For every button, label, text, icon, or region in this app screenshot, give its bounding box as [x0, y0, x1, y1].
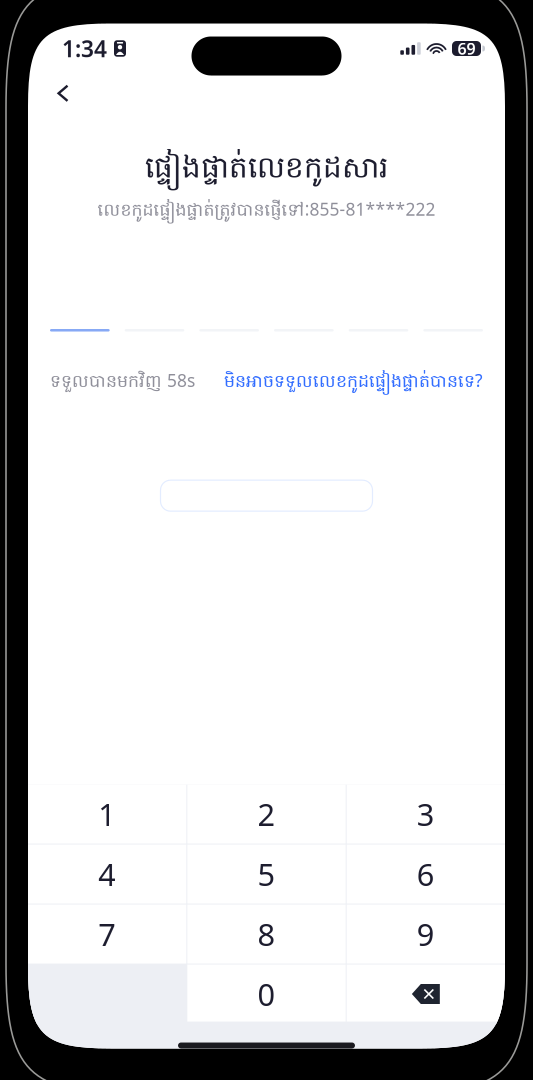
- staticText: 1:34: [62, 33, 107, 63]
- button[interactable]: 5: [187, 844, 346, 903]
- staticText: 0: [257, 974, 275, 1014]
- button[interactable]: 1: [28, 784, 186, 843]
- button[interactable]: 3: [347, 784, 505, 843]
- staticText: លេខកូដផ្ទៀងផ្ទាត់ត្រូវបានផ្ញើទៅៈ855-81**…: [97, 197, 435, 224]
- button[interactable]: មិនអាចទទួលលេខកូដផ្ទៀងផ្ទាត់បានទេ?: [224, 369, 483, 395]
- button[interactable]: 8: [187, 904, 346, 963]
- staticText: 2: [257, 794, 275, 834]
- staticText: 3: [417, 794, 435, 834]
- staticText: ទទួលបានមកវិញ 58s: [50, 369, 195, 395]
- button[interactable]: Back: [42, 75, 84, 111]
- staticText: 9: [417, 914, 435, 954]
- button[interactable]: 2: [187, 784, 346, 843]
- staticText: 7: [98, 914, 116, 954]
- button[interactable]: 6: [347, 844, 505, 903]
- staticText: មិនអាចទទួលលេខកូដផ្ទៀងផ្ទាត់បានទេ?: [224, 369, 483, 395]
- button[interactable]: Delete: [347, 964, 505, 1023]
- button[interactable]: [160, 480, 372, 511]
- button[interactable]: 9: [347, 904, 505, 963]
- staticText: 5: [257, 854, 275, 894]
- button[interactable]: 4: [28, 844, 186, 903]
- staticText: 69: [457, 38, 475, 59]
- staticText: 4: [98, 854, 116, 894]
- staticText: ផ្ទៀងផ្ទាត់លេខកូដសារ: [145, 149, 388, 191]
- staticText: 6: [417, 854, 435, 894]
- button[interactable]: 7: [28, 904, 186, 963]
- staticText: 1: [98, 794, 116, 834]
- button[interactable]: 0: [187, 964, 346, 1023]
- staticText: 8: [257, 914, 275, 954]
